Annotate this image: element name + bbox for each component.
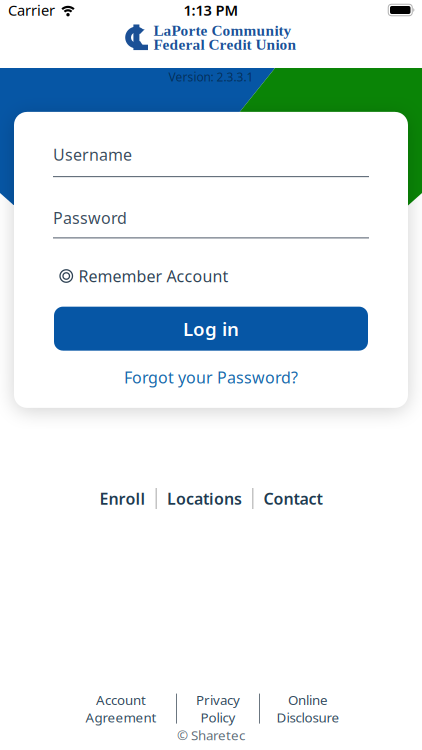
staticText: Log in xyxy=(183,316,239,341)
staticText: Agreement xyxy=(85,709,156,726)
staticText: © Sharetec xyxy=(177,726,245,744)
button[interactable]: Forgot your Password? xyxy=(14,367,408,388)
staticText: Privacy xyxy=(196,691,240,709)
staticText: Enroll xyxy=(99,488,145,509)
button[interactable]: Account xyxy=(66,691,176,726)
staticText: Remember Account xyxy=(78,265,228,287)
button[interactable]: Online xyxy=(260,691,356,726)
button[interactable]: Contact xyxy=(263,488,322,509)
button[interactable]: Log in xyxy=(54,307,368,351)
button[interactable]: Remember Account xyxy=(14,265,228,287)
button[interactable]: Enroll xyxy=(99,488,145,509)
staticText: Version: 2.3.3.1 xyxy=(168,69,253,85)
staticText: Contact xyxy=(263,488,322,509)
staticText: Locations xyxy=(167,488,242,509)
button[interactable]: Privacy xyxy=(177,691,259,726)
staticText: Carrier xyxy=(8,0,55,20)
button[interactable]: Locations xyxy=(167,488,242,509)
staticText: 1:13 PM xyxy=(183,0,238,20)
staticText: Policy xyxy=(200,709,235,726)
staticText: Password xyxy=(53,207,127,228)
staticText: LaPorte Community xyxy=(153,22,291,39)
staticText: Forgot your Password? xyxy=(124,367,298,388)
staticText: Disclosure xyxy=(276,709,339,726)
staticText: Username xyxy=(53,144,132,165)
staticText: Online xyxy=(288,691,328,709)
staticText: Account xyxy=(96,691,146,709)
staticText: Federal Credit Union xyxy=(153,36,296,53)
